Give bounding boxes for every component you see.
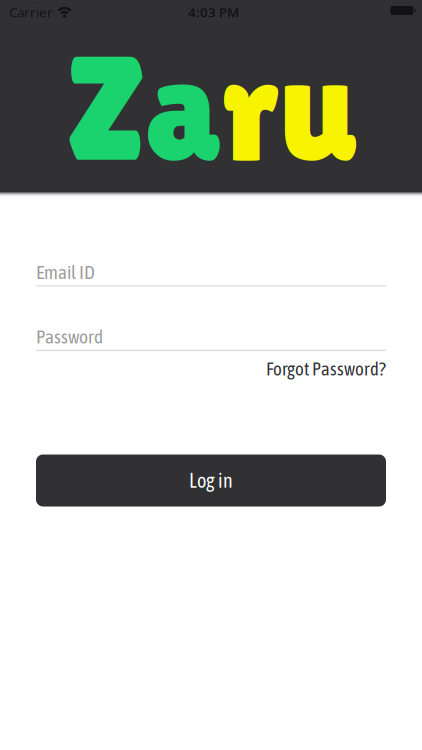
staticText: Carrier [9,3,53,21]
staticText: Forgot Password? [266,358,386,379]
button[interactable]: Log in [36,454,386,506]
button[interactable]: Forgot Password? [266,358,386,379]
staticText: Password [36,326,103,348]
staticText: Za [64,25,221,192]
staticText: Log in [189,469,233,492]
button[interactable]: Email ID [36,261,386,287]
staticText: Email ID [36,261,95,283]
staticText: 4:03 PM [188,3,239,21]
staticText: ru [221,25,358,192]
button[interactable]: Password [36,326,386,351]
